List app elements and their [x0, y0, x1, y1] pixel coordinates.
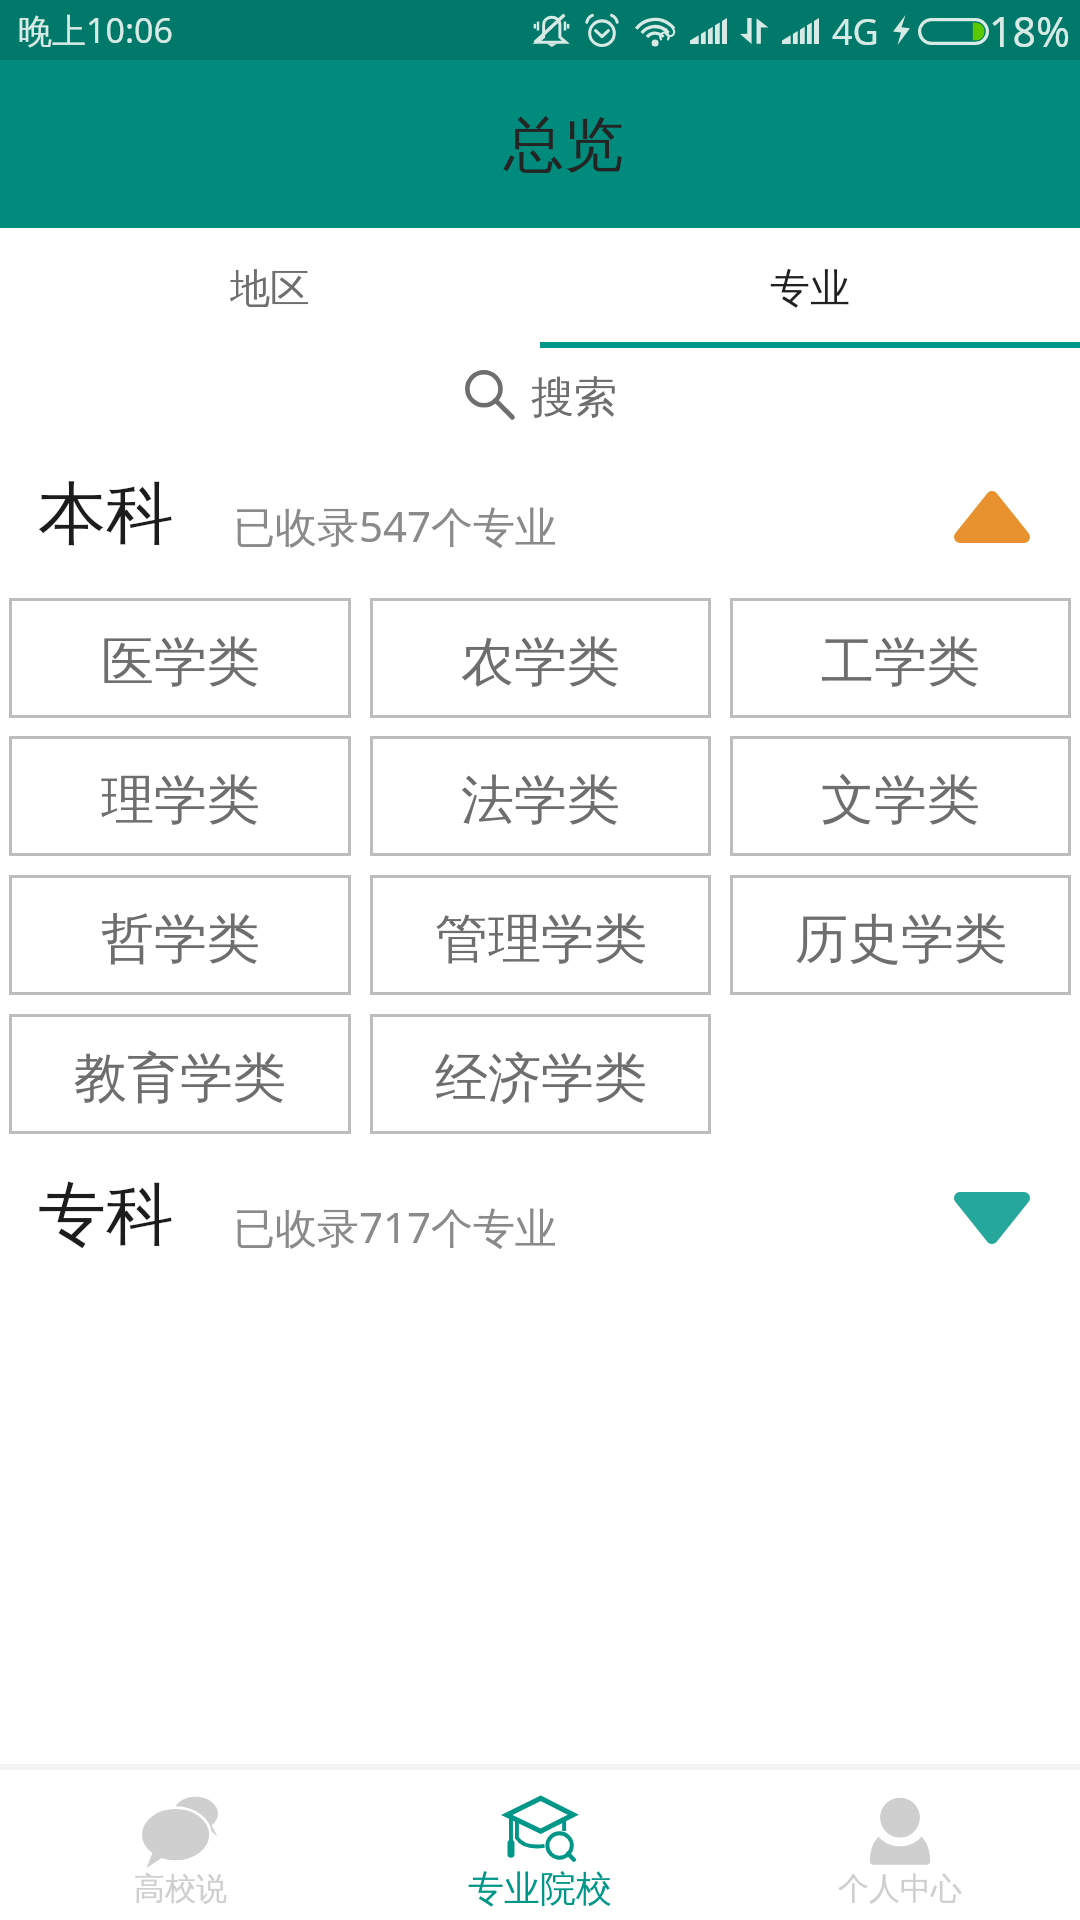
- staticText: 专科: [38, 1173, 174, 1259]
- button[interactable]: 专业院校: [360, 1770, 720, 1920]
- staticText: 已收录717个专业: [233, 1198, 558, 1255]
- staticText: 经济学类: [435, 1045, 647, 1112]
- button[interactable]: 法学类: [370, 736, 711, 856]
- button[interactable]: 搜索: [452, 360, 629, 422]
- staticText: 医学类: [101, 629, 260, 696]
- button[interactable]: 地区: [0, 228, 540, 348]
- button[interactable]: 管理学类: [370, 875, 711, 995]
- staticText: 历史学类: [795, 906, 1007, 973]
- button[interactable]: 专科: [0, 1134, 1080, 1299]
- staticText: 个人中心: [838, 1869, 962, 1908]
- button[interactable]: 哲学类: [9, 875, 351, 995]
- button[interactable]: 文学类: [730, 736, 1071, 856]
- staticText: 哲学类: [101, 906, 260, 973]
- staticText: 高校说: [134, 1869, 227, 1908]
- staticText: 文学类: [821, 767, 980, 834]
- staticText: 搜索: [531, 371, 617, 425]
- staticText: 晚上10:06: [18, 7, 173, 53]
- button[interactable]: 个人中心: [720, 1770, 1080, 1920]
- staticText: 工学类: [821, 629, 980, 696]
- button[interactable]: 教育学类: [9, 1014, 351, 1134]
- staticText: 地区: [230, 263, 310, 313]
- button[interactable]: 医学类: [9, 598, 351, 718]
- button[interactable]: 本科: [0, 433, 1080, 598]
- staticText: 4G: [832, 7, 879, 56]
- staticText: 本科: [38, 472, 174, 558]
- button[interactable]: 专业: [540, 228, 1080, 348]
- other: 收起: [954, 491, 1030, 543]
- button[interactable]: 工学类: [730, 598, 1071, 718]
- staticText: 已收录547个专业: [233, 497, 558, 554]
- button[interactable]: 高校说: [0, 1770, 360, 1920]
- staticText: 管理学类: [435, 906, 647, 973]
- staticText: 总览: [504, 107, 624, 183]
- staticText: 专业: [770, 263, 850, 313]
- staticText: 专业院校: [468, 1866, 612, 1911]
- staticText: 18%: [989, 3, 1070, 59]
- button[interactable]: 理学类: [9, 736, 351, 856]
- staticText: 农学类: [461, 629, 620, 696]
- other: 展开: [954, 1192, 1030, 1244]
- staticText: 法学类: [461, 767, 620, 834]
- staticText: 理学类: [101, 767, 260, 834]
- other: 搜索: [464, 369, 512, 419]
- staticText: 教育学类: [74, 1045, 286, 1112]
- button[interactable]: 经济学类: [370, 1014, 711, 1134]
- button[interactable]: 历史学类: [730, 875, 1071, 995]
- button[interactable]: 农学类: [370, 598, 711, 718]
